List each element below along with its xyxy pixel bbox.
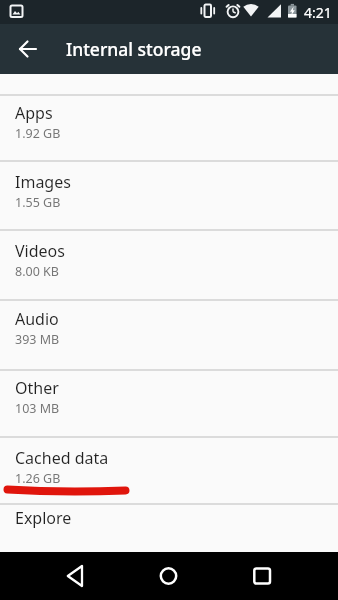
staticText: Cached data bbox=[15, 447, 109, 469]
button[interactable]: Audio bbox=[0, 301, 338, 369]
button[interactable]: Cached data bbox=[0, 438, 338, 503]
staticText: 8.00 KB bbox=[15, 263, 59, 280]
staticText: 103 MB bbox=[15, 400, 60, 417]
staticText: Audio bbox=[15, 308, 59, 330]
button[interactable] bbox=[144, 552, 192, 600]
staticText: Videos bbox=[15, 240, 65, 262]
staticText: 1.92 GB bbox=[15, 125, 61, 142]
button[interactable]: Explore bbox=[0, 505, 338, 552]
button[interactable]: Other bbox=[0, 371, 338, 436]
staticText: Explore bbox=[15, 507, 72, 529]
button[interactable]: Apps bbox=[0, 96, 338, 160]
staticText: Apps bbox=[15, 102, 53, 124]
staticText: 4:21 bbox=[304, 3, 332, 22]
button[interactable] bbox=[51, 552, 99, 600]
button[interactable]: Videos bbox=[0, 231, 338, 299]
button[interactable]: Images bbox=[0, 162, 338, 229]
staticText: Internal storage bbox=[66, 37, 202, 61]
staticText: 393 MB bbox=[15, 331, 60, 348]
staticText: Images bbox=[15, 171, 71, 193]
button[interactable] bbox=[238, 552, 286, 600]
staticText: Other bbox=[15, 377, 59, 399]
button[interactable] bbox=[12, 33, 44, 65]
staticText: 1.26 GB bbox=[15, 470, 61, 487]
staticText: 1.55 GB bbox=[15, 194, 61, 211]
